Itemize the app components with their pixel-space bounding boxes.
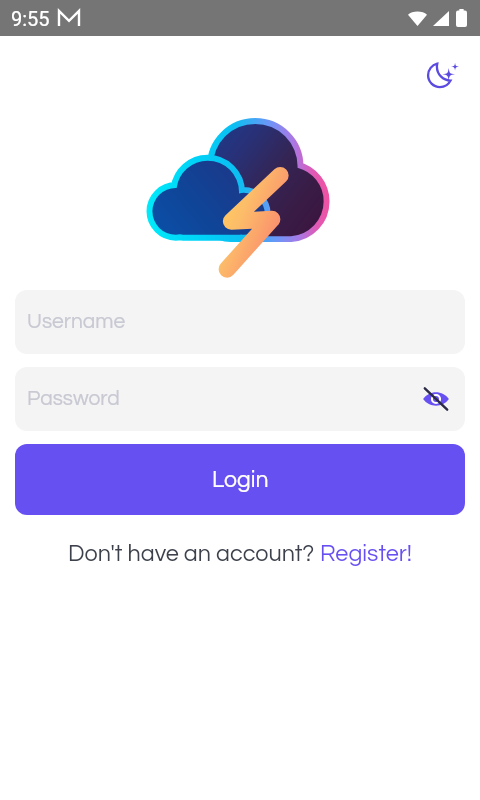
button[interactable]: Register! xyxy=(320,542,413,566)
button[interactable]: Username xyxy=(15,290,465,354)
staticText: Register! xyxy=(320,542,413,566)
staticText: Username xyxy=(27,311,126,333)
staticText: Login xyxy=(212,468,269,492)
button[interactable]: Show password xyxy=(419,382,453,416)
staticText: Password xyxy=(27,388,120,410)
button[interactable]: Password xyxy=(15,367,465,431)
button[interactable]: Login xyxy=(15,444,465,515)
staticText: Don't have an account? xyxy=(68,542,320,566)
button[interactable]: Toggle dark mode xyxy=(420,55,464,99)
staticText: 9:55 xyxy=(11,7,50,30)
